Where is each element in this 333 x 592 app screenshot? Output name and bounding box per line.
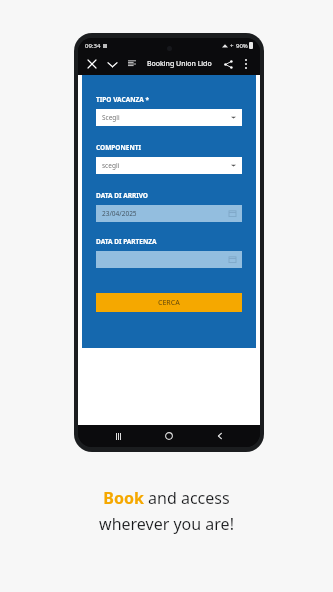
staticText: Booking Union Lido (147, 59, 212, 69)
button[interactable]: Back (209, 425, 231, 447)
button[interactable]: scegli (96, 157, 242, 174)
button[interactable]: More options (238, 56, 254, 72)
staticText: + (230, 42, 234, 50)
staticText: CERCA (158, 298, 180, 308)
button[interactable]: Expand (104, 56, 120, 72)
staticText: 09:34 (85, 42, 101, 50)
staticText: TIPO VACANZA * (96, 95, 149, 104)
button[interactable]: Recents (107, 425, 129, 447)
staticText: scegli (102, 161, 120, 170)
button[interactable]: CERCA (96, 293, 242, 312)
button[interactable]: Close (84, 56, 100, 72)
button[interactable]: Scegli (96, 109, 242, 126)
staticText: Scegli (102, 113, 120, 122)
button[interactable]: 23/04/2025 (96, 205, 242, 222)
staticText: wherever you are! (99, 513, 234, 535)
button[interactable]: Share (220, 56, 236, 72)
button[interactable]: Home (158, 425, 180, 447)
staticText: 90% (236, 42, 248, 50)
button[interactable]: Reader mode (124, 56, 140, 72)
staticText: Book and access (103, 487, 230, 509)
staticText: 23/04/2025 (102, 209, 137, 218)
staticText: COMPONENTI (96, 143, 141, 152)
staticText: DATA DI PARTENZA (96, 237, 157, 246)
staticText: DATA DI ARRIVO (96, 191, 148, 200)
